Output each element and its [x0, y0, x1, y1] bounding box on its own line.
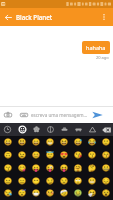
button[interactable]: Emoji: [71, 188, 85, 200]
staticText: 😅: [74, 138, 82, 146]
button[interactable]: Emoji: [85, 149, 99, 162]
staticText: 😂: [88, 138, 96, 146]
button[interactable]: Emoji: [15, 136, 29, 149]
button[interactable]: Emoji: [0, 175, 15, 188]
staticText: 20 ago: [96, 55, 109, 60]
button[interactable]: Emoji: [85, 162, 99, 175]
button[interactable]: Activity: [57, 123, 71, 136]
button[interactable]: More options: [95, 8, 113, 26]
button[interactable]: Backspace: [99, 123, 113, 136]
staticText: 😬: [88, 177, 96, 185]
button[interactable]: Emoji: [29, 175, 43, 188]
staticText: 🙄: [74, 177, 82, 185]
staticText: 😗: [88, 151, 96, 159]
staticText: 😛: [32, 164, 40, 172]
button[interactable]: Emoji: [15, 188, 29, 200]
button[interactable]: Back: [0, 8, 16, 26]
button[interactable]: Nature: [29, 123, 43, 136]
staticText: 🤕: [60, 189, 68, 197]
staticText: 😃: [18, 138, 26, 146]
staticText: 😴: [18, 189, 26, 197]
button[interactable]: Emoji: [99, 175, 113, 188]
staticText: 😶: [32, 177, 40, 185]
button[interactable]: Emoji: [0, 162, 15, 175]
staticText: 😏: [46, 177, 54, 185]
button[interactable]: hahaha: [82, 41, 110, 54]
staticText: 🤐: [102, 164, 110, 172]
button[interactable]: Emoji: [15, 175, 29, 188]
staticText: 🤔: [88, 164, 96, 172]
button[interactable]: Recent: [0, 123, 15, 136]
button[interactable]: Emoji: [43, 175, 57, 188]
staticText: escreva uma mensagem...: [31, 112, 88, 118]
button[interactable]: Emoji: [71, 149, 85, 162]
staticText: 😀: [4, 138, 12, 146]
staticText: 😙: [4, 164, 12, 172]
button[interactable]: Travel: [71, 123, 85, 136]
staticText: 😄: [32, 138, 40, 146]
staticText: hahaha: [86, 44, 106, 51]
button[interactable]: Emoji: [29, 136, 43, 149]
button[interactable]: Emoji: [29, 188, 43, 200]
staticText: 🙃: [4, 151, 12, 159]
button[interactable]: Emoji: [85, 188, 99, 200]
staticText: 🤧: [88, 189, 96, 197]
button[interactable]: Emoji: [43, 188, 57, 200]
staticText: 😆: [60, 138, 68, 146]
button[interactable]: Emoji: [43, 162, 57, 175]
button[interactable]: Emoji: [57, 175, 71, 188]
staticText: 😵: [102, 189, 110, 197]
button[interactable]: Emoji: [0, 149, 15, 162]
staticText: Black Planet: [16, 13, 53, 21]
button[interactable]: Emoji: [71, 162, 85, 175]
button[interactable]: Emoji: [29, 149, 43, 162]
staticText: 😘: [74, 151, 82, 159]
staticText: 😝: [60, 164, 68, 172]
button[interactable]: Emoji: [43, 149, 57, 162]
button[interactable]: Emoji: [99, 136, 113, 149]
staticText: 😍: [60, 151, 68, 159]
button[interactable]: Emoji: [71, 136, 85, 149]
button[interactable]: Emoji: [57, 149, 71, 162]
staticText: 😇: [46, 151, 54, 159]
staticText: 😷: [32, 189, 40, 197]
button[interactable]: Emoji: [15, 149, 29, 162]
staticText: 😜: [46, 164, 54, 172]
button[interactable]: Food: [43, 123, 57, 136]
button[interactable]: Emoji: [43, 136, 57, 149]
button[interactable]: Keyboard: [16, 107, 31, 123]
staticText: 😐: [4, 177, 12, 185]
button[interactable]: Send: [88, 107, 106, 123]
staticText: 🤒: [46, 189, 54, 197]
staticText: 😊: [32, 151, 40, 159]
staticText: 😚: [102, 151, 110, 159]
button[interactable]: Emoji: [99, 188, 113, 200]
button[interactable]: Emoji: [57, 136, 71, 149]
button[interactable]: Smileys: [15, 123, 29, 136]
button[interactable]: Emoji: [71, 175, 85, 188]
staticText: 😔: [102, 177, 110, 185]
button[interactable]: Camera: [0, 107, 16, 123]
button[interactable]: Symbols: [85, 123, 99, 136]
button[interactable]: Emoji: [15, 162, 29, 175]
staticText: 😪: [4, 189, 12, 197]
staticText: 🙂: [102, 138, 110, 146]
button[interactable]: Emoji: [57, 162, 71, 175]
button[interactable]: Emoji: [29, 162, 43, 175]
staticText: 😒: [60, 177, 68, 185]
button[interactable]: Emoji: [0, 136, 15, 149]
staticText: 🤗: [74, 164, 82, 172]
button[interactable]: Emoji: [85, 136, 99, 149]
button[interactable]: Emoji: [99, 162, 113, 175]
button[interactable]: Emoji: [85, 175, 99, 188]
button[interactable]: Emoji: [0, 188, 15, 200]
staticText: 😑: [18, 177, 26, 185]
staticText: 😉: [18, 151, 26, 159]
button[interactable]: Emoji: [99, 149, 113, 162]
staticText: 🤢: [74, 189, 82, 197]
staticText: 😋: [18, 164, 26, 172]
button[interactable]: Emoji: [57, 188, 71, 200]
staticText: 😁: [46, 138, 54, 146]
